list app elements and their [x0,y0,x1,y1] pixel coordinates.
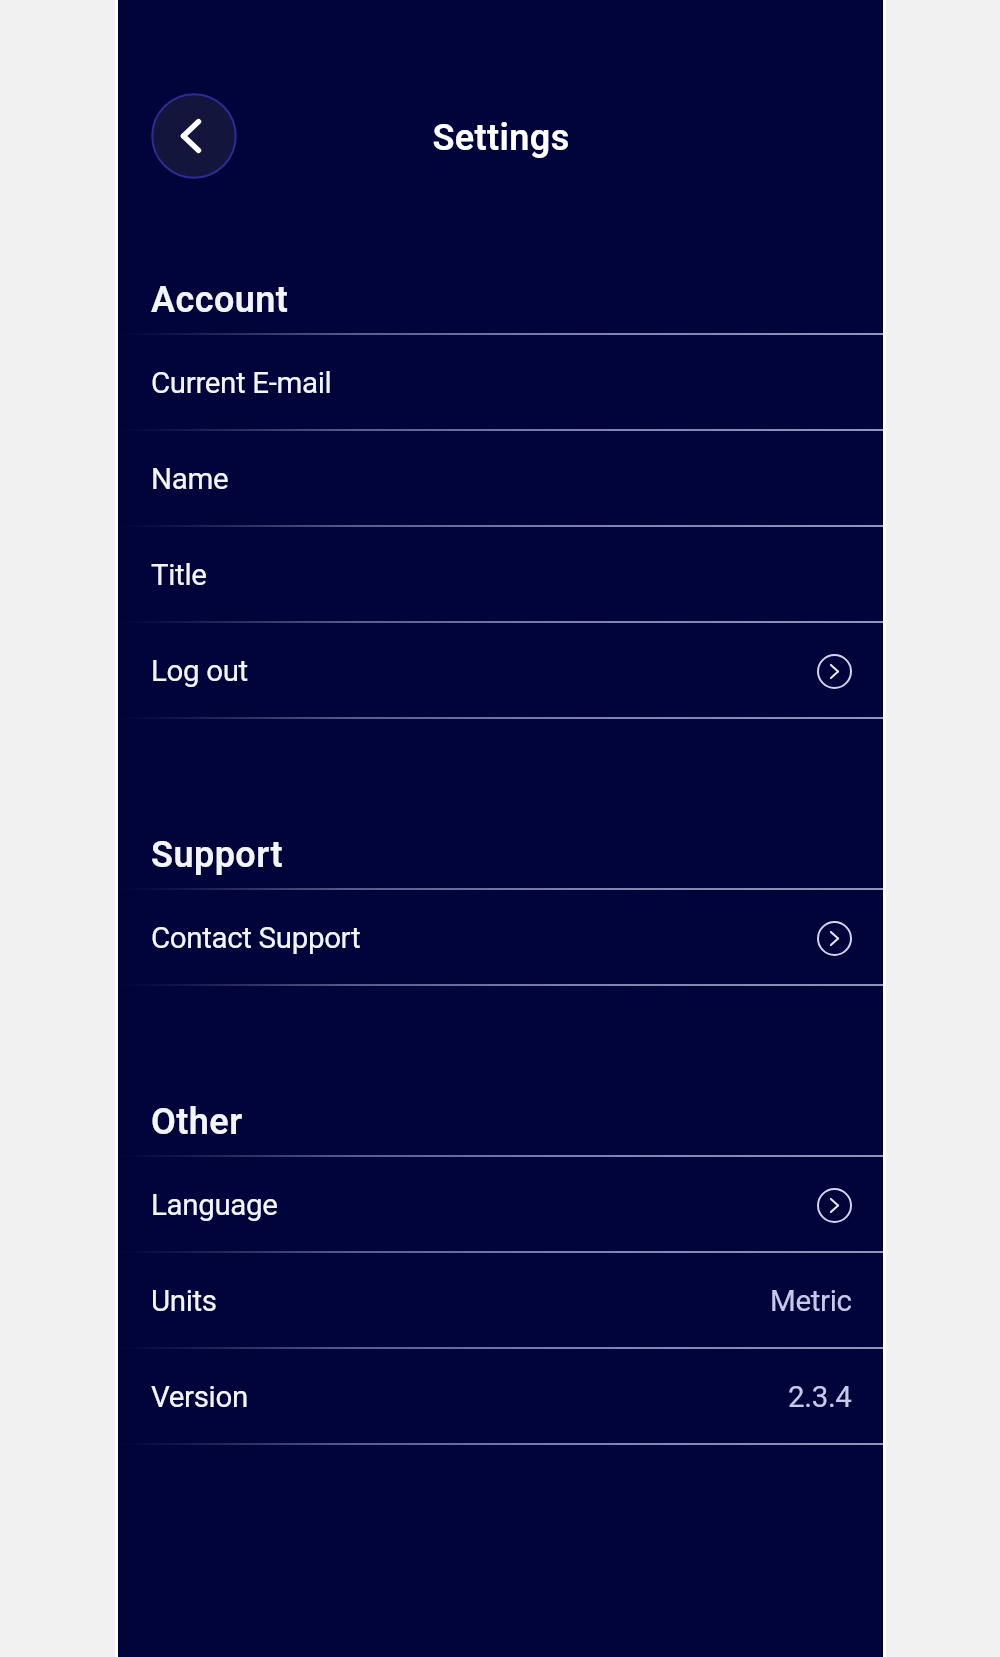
staticText: Current E-mail [151,366,332,401]
staticText: Account [151,279,289,321]
staticText: Version [151,1380,248,1415]
staticText: Name [151,462,229,497]
staticText: 2.3.4 [788,1380,852,1415]
button[interactable]: Log out [118,623,883,719]
button[interactable]: Version [118,1349,883,1445]
staticText: Other [151,1101,243,1143]
button[interactable]: Current E-mail [118,335,883,431]
button[interactable]: Title [118,527,883,623]
button[interactable]: Name [118,431,883,527]
staticText: Log out [151,654,248,689]
staticText: Title [151,558,207,593]
staticText: Units [151,1284,217,1319]
staticText: Settings [432,117,570,159]
button[interactable]: Language [118,1157,883,1253]
staticText: Contact Support [151,921,361,956]
staticText: Metric [770,1284,852,1319]
staticText: Support [151,834,284,876]
staticText: Language [151,1188,278,1223]
button[interactable]: Back [151,93,237,179]
button[interactable]: Contact Support [118,890,883,986]
button[interactable]: Units [118,1253,883,1349]
